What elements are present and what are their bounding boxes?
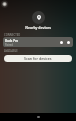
button[interactable]: Scan for devices (4, 55, 72, 62)
button[interactable]: Location (32, 11, 45, 24)
staticText: Paired (5, 43, 13, 47)
staticText: Scan for devices (24, 56, 52, 61)
staticText: Nearby devices (0, 25, 76, 30)
button[interactable]: Buds Pro (3, 37, 73, 47)
staticText: Buds Pro (5, 39, 19, 43)
staticText: CONNECTED (4, 33, 21, 37)
staticText: AVAILABLE (4, 49, 18, 53)
